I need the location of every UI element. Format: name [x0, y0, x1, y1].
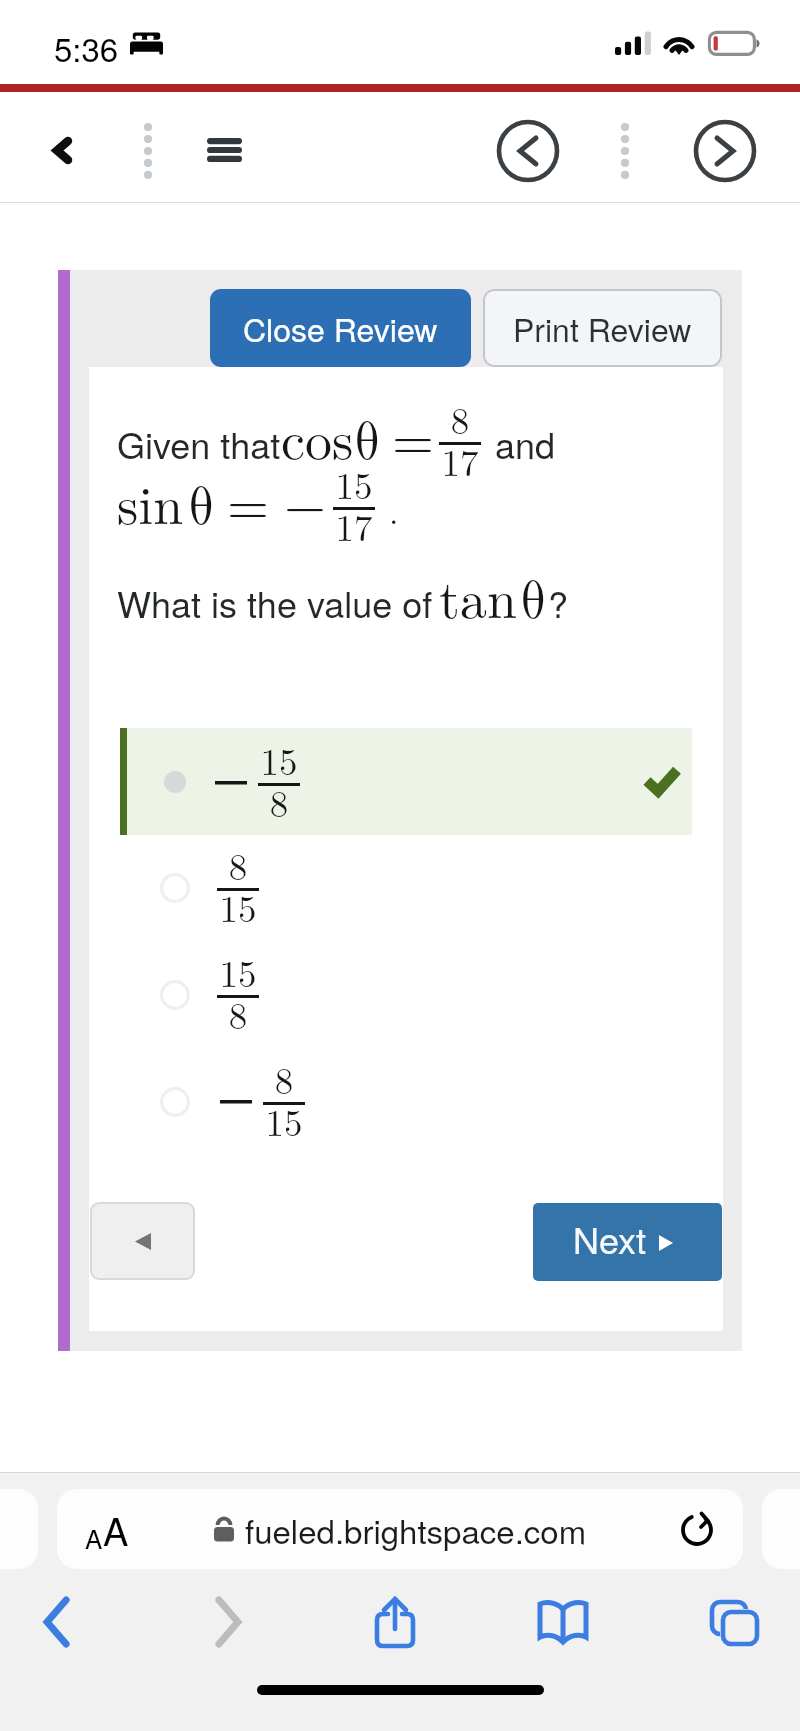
- staticText: .: [389, 486, 399, 534]
- staticText: θ: [354, 415, 381, 469]
- staticText: 8: [258, 775, 300, 827]
- button[interactable]: Back: [31, 1596, 83, 1648]
- staticText: 8: [263, 1052, 305, 1104]
- staticText: tan: [439, 557, 518, 634]
- button[interactable]: Previous question: [90, 1202, 195, 1280]
- staticText: cos: [281, 398, 354, 475]
- staticText: Given that: [117, 418, 281, 470]
- staticText: Close Review: [243, 305, 438, 351]
- staticText: =: [227, 463, 270, 540]
- staticText: and: [495, 418, 556, 470]
- staticText: A: [85, 1519, 103, 1556]
- staticText: −: [284, 463, 327, 540]
- staticText: 5:36: [54, 24, 119, 62]
- staticText: θ: [188, 480, 215, 534]
- button[interactable]: Back: [32, 120, 92, 180]
- staticText: What is the value of: [117, 577, 433, 629]
- staticText: θ: [520, 574, 547, 628]
- button[interactable]: Next: [533, 1203, 722, 1281]
- staticText: 17: [439, 434, 481, 486]
- button[interactable]: 15: [120, 945, 692, 1045]
- staticText: fueled.brightspace.com: [245, 1506, 587, 1553]
- staticText: =: [392, 398, 435, 475]
- staticText: A: [103, 1502, 129, 1556]
- button[interactable]: Menu: [194, 120, 254, 180]
- staticText: 8: [217, 838, 259, 890]
- button[interactable]: A: [57, 1489, 743, 1569]
- button[interactable]: 8: [120, 838, 692, 938]
- button[interactable]: Previous page: [495, 118, 561, 184]
- button[interactable]: Next page: [692, 118, 758, 184]
- button[interactable]: Tabs: [706, 1596, 758, 1648]
- button[interactable]: 8: [120, 1052, 692, 1152]
- staticText: sin: [117, 463, 184, 540]
- staticText: 15: [263, 1094, 305, 1146]
- staticText: Print Review: [513, 305, 692, 351]
- button[interactable]: Print Review: [483, 289, 722, 367]
- button[interactable]: Close Review: [210, 289, 471, 367]
- button[interactable]: Share: [369, 1596, 421, 1648]
- staticText: 8: [217, 987, 259, 1039]
- staticText: Next: [573, 1213, 647, 1265]
- staticText: 17: [333, 499, 375, 551]
- button[interactable]: Bookmarks: [535, 1594, 591, 1650]
- button[interactable]: Reload: [673, 1505, 721, 1553]
- staticText: ?: [548, 577, 569, 629]
- staticText: 15: [258, 733, 300, 785]
- staticText: 15: [217, 945, 259, 997]
- staticText: 15: [333, 457, 375, 509]
- button[interactable]: 15: [120, 728, 692, 835]
- staticText: 8: [439, 392, 481, 444]
- staticText: 15: [217, 880, 259, 932]
- button[interactable]: Forward: [202, 1596, 254, 1648]
